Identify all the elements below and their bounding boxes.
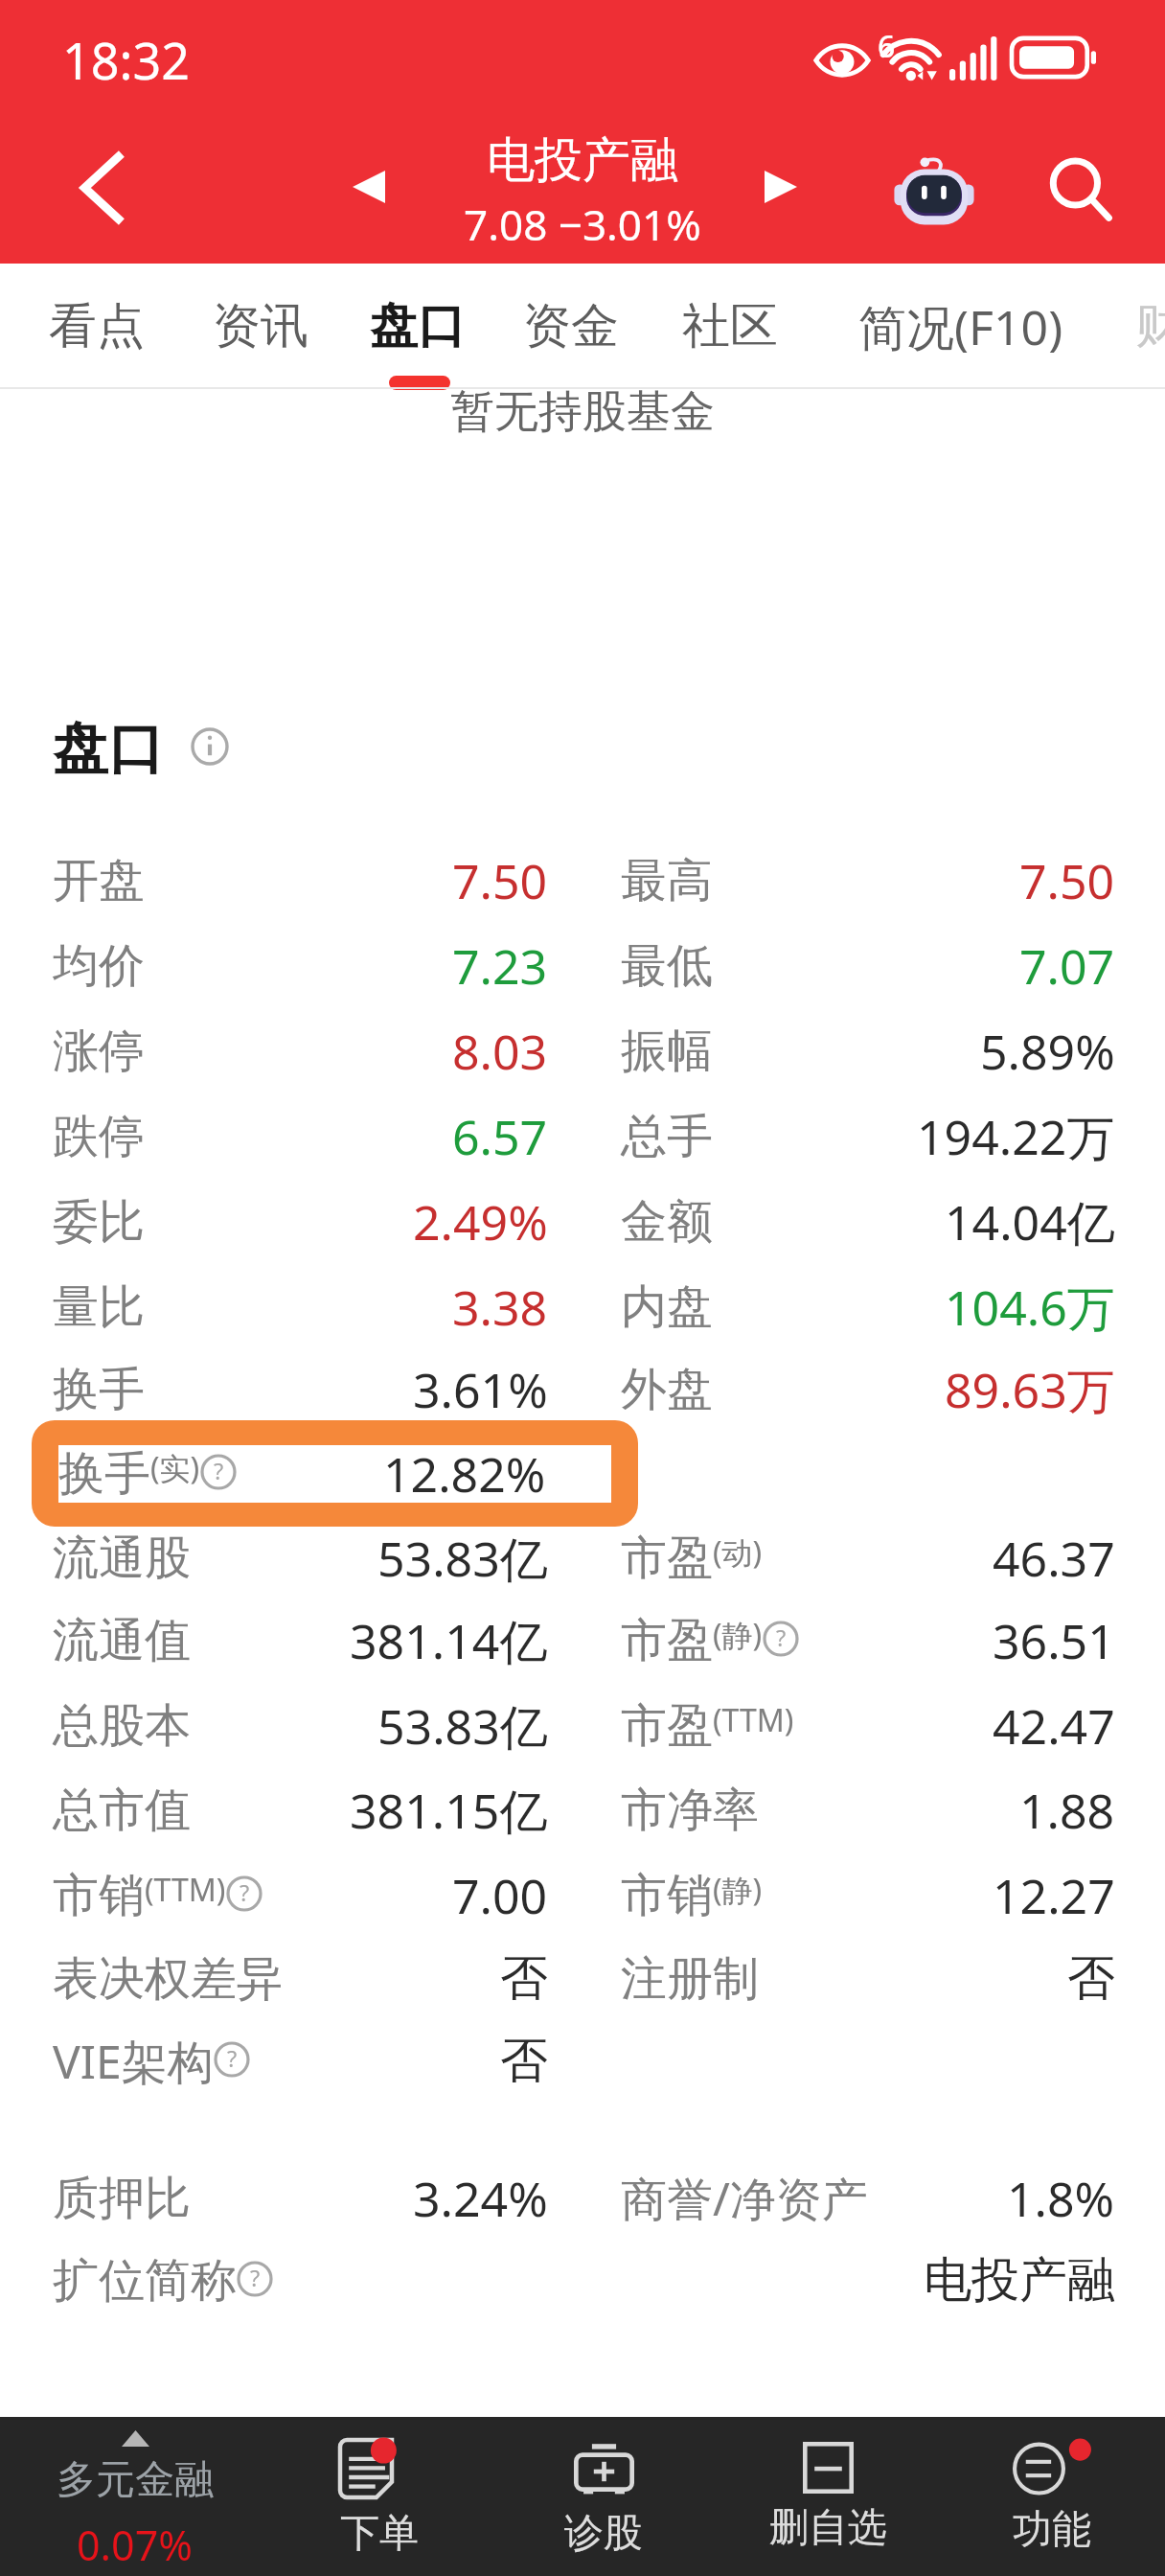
staticText: 盘口 xyxy=(370,296,466,356)
staticText: 外盘 xyxy=(621,1361,713,1418)
staticText: 6.57 xyxy=(452,1104,548,1169)
button[interactable]: 质押比 xyxy=(0,2155,569,2241)
staticText: 8.03 xyxy=(452,1019,548,1084)
button[interactable]: 总市值 xyxy=(0,1767,569,1852)
button[interactable]: 振幅 xyxy=(569,1008,1165,1093)
button[interactable]: 最高 xyxy=(569,838,1165,923)
button[interactable]: 财 xyxy=(1110,264,1165,389)
staticText: 市盈 xyxy=(621,1529,713,1587)
button[interactable]: 跌停 xyxy=(0,1093,569,1179)
staticText: 53.83亿 xyxy=(377,1526,548,1591)
staticText: 7.50 xyxy=(452,848,548,913)
staticText: 换手 xyxy=(58,1445,150,1503)
staticText: 注册制 xyxy=(621,1950,759,2008)
staticText: ? xyxy=(250,2263,261,2293)
staticText: 电投产融 xyxy=(487,130,678,191)
button[interactable]: Search xyxy=(1033,142,1129,238)
staticText: 53.83亿 xyxy=(377,1693,548,1759)
button[interactable]: 看点 xyxy=(24,264,170,389)
staticText: ? xyxy=(776,1622,787,1653)
button[interactable]: 市净率 xyxy=(569,1767,1165,1852)
button[interactable]: 开盘 xyxy=(0,838,569,923)
button[interactable]: 简况(F10) xyxy=(834,264,1088,389)
staticText: 3.61% xyxy=(413,1357,548,1422)
staticText: 12.27 xyxy=(993,1863,1115,1928)
staticText: 暂无持股基金 xyxy=(0,384,1165,440)
button[interactable]: 盘口 xyxy=(345,264,491,389)
staticText: 删自选 xyxy=(769,2503,887,2553)
staticText: 多元金融 xyxy=(57,2455,214,2505)
button[interactable]: 功能 xyxy=(940,2417,1164,2576)
button[interactable]: 流通股 xyxy=(0,1515,569,1600)
button[interactable]: 下单 xyxy=(267,2417,491,2576)
button[interactable]: 市盈 xyxy=(569,1515,1165,1600)
button[interactable]: VIE架构 xyxy=(0,2018,569,2104)
button[interactable]: 诊股 xyxy=(491,2417,716,2576)
staticText: 最低 xyxy=(621,937,713,995)
staticText: 否 xyxy=(500,2031,548,2091)
button[interactable]: 均价 xyxy=(0,923,569,1008)
button[interactable]: 市销 xyxy=(569,1852,1165,1938)
staticText: 总市值 xyxy=(53,1782,191,1839)
staticText: 简况(F10) xyxy=(858,294,1063,359)
staticText: (TTM) xyxy=(145,1869,226,1911)
button[interactable]: 外盘 xyxy=(569,1346,1165,1432)
staticText: 3.24% xyxy=(413,2166,548,2231)
staticText: 194.22万 xyxy=(917,1104,1115,1169)
button[interactable]: AI assistant xyxy=(886,144,982,240)
button[interactable]: Next stock xyxy=(738,144,824,230)
button[interactable]: 电投产融 xyxy=(464,130,701,253)
button[interactable]: 量比 xyxy=(0,1264,569,1349)
staticText: 7.50 xyxy=(1019,848,1115,913)
staticText: 下单 xyxy=(340,2509,419,2559)
staticText: (动) xyxy=(713,1531,763,1574)
button[interactable]: Back xyxy=(53,134,148,230)
button[interactable]: 总股本 xyxy=(0,1683,569,1768)
button[interactable]: 删自选 xyxy=(716,2417,940,2576)
button[interactable]: 注册制 xyxy=(569,1936,1165,2021)
staticText: (TTM) xyxy=(713,1699,794,1741)
button[interactable]: 盘口 xyxy=(53,714,229,784)
button[interactable]: 换手 xyxy=(0,1346,569,1432)
button[interactable]: 流通值 xyxy=(0,1598,569,1683)
staticText: 市销 xyxy=(621,1867,713,1924)
button[interactable]: 最低 xyxy=(569,923,1165,1008)
staticText: 42.47 xyxy=(993,1693,1115,1759)
staticText: 7.00 xyxy=(452,1863,548,1928)
button[interactable]: 内盘 xyxy=(569,1264,1165,1349)
staticText: 381.14亿 xyxy=(350,1608,548,1673)
button[interactable]: 多元金融 sector xyxy=(23,2417,247,2576)
staticText: 14.04亿 xyxy=(945,1189,1115,1254)
button[interactable]: 总手 xyxy=(569,1093,1165,1179)
button[interactable]: 社区 xyxy=(657,264,803,389)
button[interactable]: 资金 xyxy=(498,264,644,389)
staticText: 委比 xyxy=(53,1193,145,1251)
staticText: 诊股 xyxy=(564,2509,643,2559)
button[interactable]: 表决权差异 xyxy=(0,1936,569,2021)
staticText: 看点 xyxy=(49,296,145,356)
staticText: 89.63万 xyxy=(945,1357,1115,1422)
button[interactable]: 金额 xyxy=(569,1179,1165,1264)
staticText: 否 xyxy=(1067,1948,1115,2009)
button[interactable]: 资讯 xyxy=(188,264,333,389)
staticText: 电投产融 xyxy=(924,2250,1115,2311)
staticText: 5.89% xyxy=(980,1019,1115,1084)
button[interactable] xyxy=(32,1420,638,1527)
button[interactable]: 市盈 xyxy=(569,1598,1165,1683)
button[interactable]: 市盈 xyxy=(569,1683,1165,1768)
button[interactable]: 涨停 xyxy=(0,1008,569,1093)
staticText: 36.51 xyxy=(993,1608,1115,1673)
staticText: 6 xyxy=(878,25,896,67)
button[interactable]: 扩位简称 xyxy=(0,2238,569,2323)
staticText: 质押比 xyxy=(53,2170,191,2227)
button[interactable]: 委比 xyxy=(0,1179,569,1264)
staticText: (实) xyxy=(150,1447,200,1489)
button[interactable]: 电投产融 xyxy=(569,2238,1165,2323)
button[interactable]: Previous stock xyxy=(326,144,412,230)
staticText: 内盘 xyxy=(621,1278,713,1336)
staticText: ? xyxy=(227,2043,238,2074)
staticText: 0.07% xyxy=(77,2517,194,2573)
button[interactable]: 商誉/净资产 xyxy=(569,2155,1165,2241)
button[interactable]: 市销 xyxy=(0,1852,569,1938)
